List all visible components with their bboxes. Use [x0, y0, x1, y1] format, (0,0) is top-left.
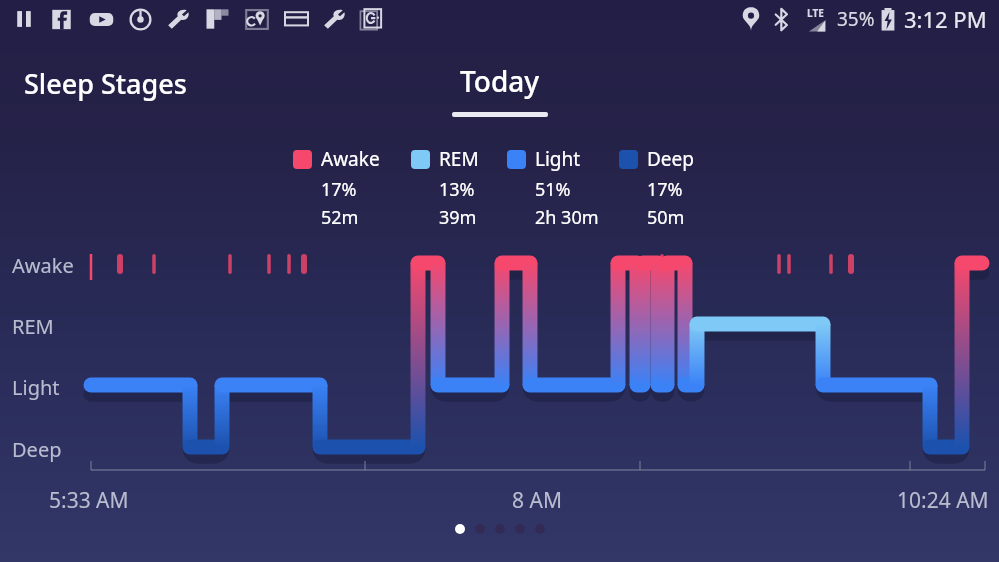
other: Google Plus [360, 8, 382, 31]
staticText: 3:12 PM [904, 4, 987, 34]
staticText: Awake [12, 252, 74, 279]
button[interactable]: Light [507, 146, 619, 230]
staticText: 52m [321, 205, 359, 230]
staticText: Light [12, 374, 60, 401]
button[interactable]: Today [446, 62, 554, 117]
other: Flipboard [205, 8, 230, 30]
other: Facebook [51, 9, 72, 30]
staticText: Sleep Stages [24, 65, 187, 102]
staticText: 5:33 AM [49, 486, 129, 515]
other: Bluetooth [773, 8, 790, 31]
button[interactable] [535, 524, 545, 534]
button[interactable]: REM [411, 146, 507, 230]
other: Location [742, 7, 760, 31]
staticText: 39m [439, 205, 477, 230]
other: Paused [14, 8, 34, 30]
other: YouTube [89, 9, 114, 30]
other: Maps [245, 8, 269, 31]
button[interactable] [475, 524, 485, 534]
staticText: 17% [321, 177, 357, 202]
other: Charging [880, 8, 896, 31]
button[interactable]: Deep [619, 146, 719, 230]
button[interactable] [495, 524, 505, 534]
staticText: 51% [535, 177, 571, 202]
staticText: LTE [807, 6, 824, 20]
staticText: 13% [439, 177, 475, 202]
button[interactable] [515, 524, 525, 534]
staticText: REM [12, 313, 54, 340]
staticText: Today [460, 62, 540, 100]
staticText: 50m [647, 205, 685, 230]
staticText: Deep [12, 436, 62, 463]
staticText: 35% [837, 6, 875, 32]
button[interactable]: Awake [293, 146, 411, 230]
staticText: 10:24 AM [897, 486, 989, 515]
staticText: 8 AM [512, 486, 562, 515]
staticText: Awake [321, 146, 380, 172]
staticText: Light [535, 146, 581, 172]
staticText: Deep [647, 146, 694, 172]
staticText: 17% [647, 177, 683, 202]
staticText: REM [439, 146, 479, 172]
button[interactable] [455, 524, 465, 534]
other: Tool [167, 8, 190, 30]
staticText: 2h 30m [535, 205, 599, 230]
other: Tool [323, 8, 346, 30]
other: Timer [129, 8, 152, 31]
other: Wallet [284, 9, 309, 29]
